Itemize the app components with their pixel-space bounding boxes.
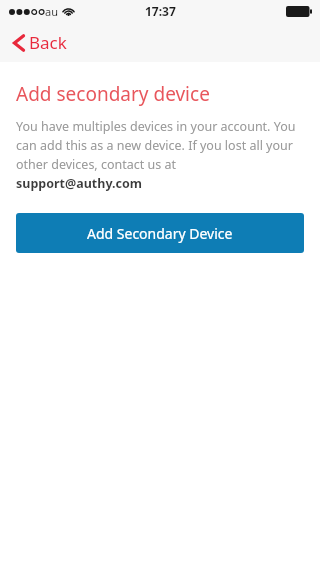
staticText: 17:37 [145, 3, 176, 19]
staticText: Add Secondary Device [87, 224, 233, 243]
staticText: au [45, 4, 58, 19]
staticText: Back [29, 31, 67, 54]
staticText: Add secondary device [16, 81, 210, 107]
button[interactable]: Add Secondary Device [16, 213, 304, 253]
button[interactable]: Back [0, 25, 81, 60]
staticText: You have multiples devices in your accou… [16, 118, 304, 192]
